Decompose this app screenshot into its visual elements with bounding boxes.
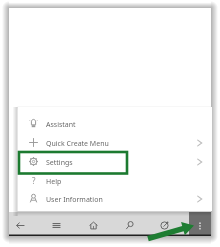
button[interactable]: Home <box>83 212 103 236</box>
button[interactable]: User Information <box>18 189 212 208</box>
button[interactable]: Settings <box>18 152 212 171</box>
staticText: Assistant <box>46 120 76 130</box>
button[interactable]: More options <box>189 212 211 236</box>
staticText: User Information <box>46 195 103 205</box>
button[interactable]: Quick Create Menu <box>18 133 212 152</box>
button[interactable]: Menu <box>46 212 66 236</box>
button[interactable]: Assistant <box>18 114 212 133</box>
button[interactable]: Back <box>10 212 30 236</box>
staticText: ? <box>32 175 36 186</box>
staticText: Quick Create Menu <box>46 139 109 149</box>
button[interactable]: ? <box>18 171 212 190</box>
button[interactable]: Search <box>119 212 139 236</box>
staticText: Help <box>46 177 62 187</box>
button[interactable]: Navigate <box>154 212 174 236</box>
staticText: Settings <box>46 158 73 168</box>
